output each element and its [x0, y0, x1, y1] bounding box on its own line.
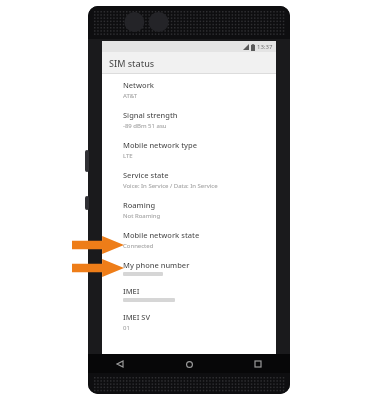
staticText: 01: [123, 324, 130, 332]
staticText: Mobile network state: [123, 230, 200, 240]
button[interactable]: Mobile network type: [123, 140, 276, 170]
button[interactable]: Signal strength: [123, 110, 276, 140]
button[interactable]: IMEI: [123, 286, 276, 312]
staticText: Roaming: [123, 200, 156, 210]
staticText: Service state: [123, 170, 169, 180]
button[interactable]: Service state: [123, 170, 276, 200]
button[interactable]: Roaming: [123, 200, 276, 230]
button[interactable]: Network: [123, 80, 276, 110]
button[interactable]: Mobile network state: [123, 230, 276, 260]
button[interactable]: Recent apps: [252, 358, 264, 370]
staticText: Signal strength: [123, 110, 178, 120]
staticText: Not Roaming: [123, 212, 161, 220]
staticText: Connected: [123, 242, 154, 250]
staticText: 13:37: [257, 43, 273, 51]
staticText: My phone number: [123, 260, 190, 270]
staticText: Network: [123, 80, 154, 90]
staticText: Mobile network type: [123, 140, 198, 150]
button[interactable]: Back: [114, 358, 126, 370]
button[interactable]: My phone number: [123, 260, 276, 286]
button[interactable]: Home: [183, 358, 195, 370]
staticText: LTE: [123, 152, 133, 160]
staticText: Voice: In Service / Data: In Service: [123, 182, 218, 190]
staticText: IMEI SV: [123, 312, 151, 322]
staticText: SIM status: [109, 57, 155, 69]
staticText: AT&T: [123, 92, 137, 100]
staticText: -89 dBm 51 asu: [123, 122, 167, 130]
staticText: IMEI: [123, 286, 140, 296]
button[interactable]: IMEI SV: [123, 312, 276, 342]
